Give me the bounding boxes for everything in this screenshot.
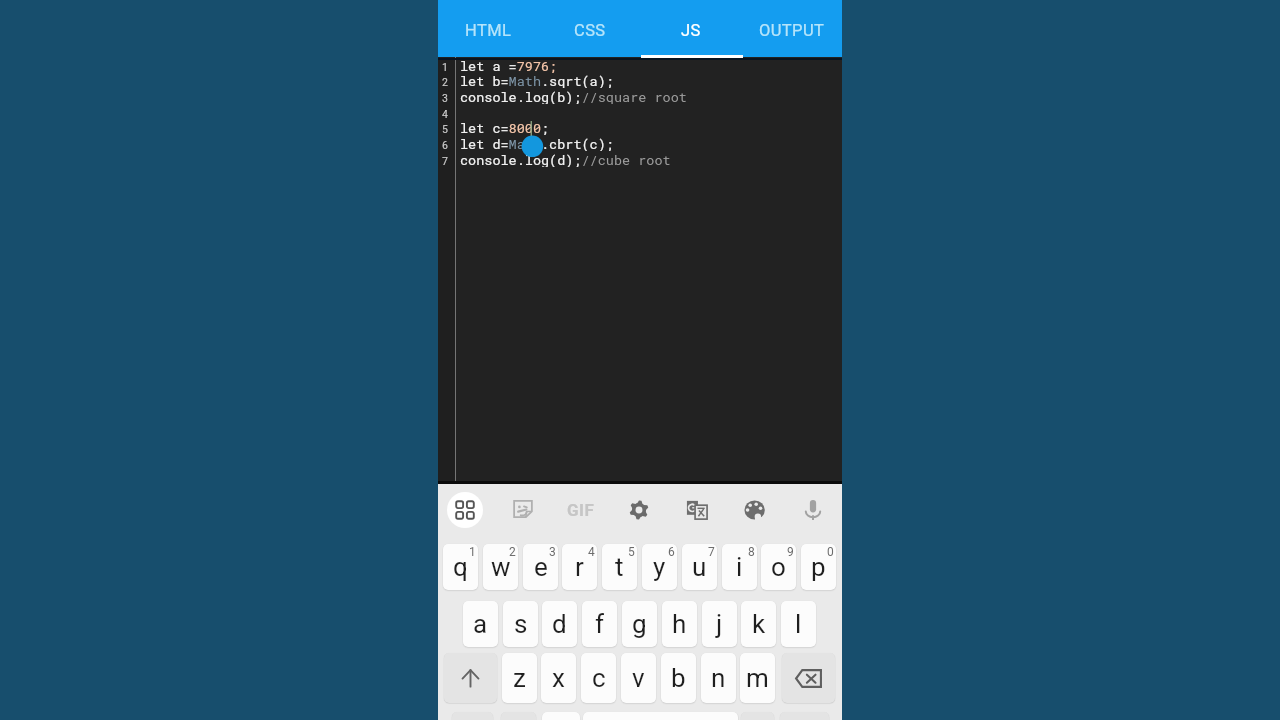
button[interactable]: CSS bbox=[539, 0, 640, 57]
staticText: HTML bbox=[465, 21, 512, 40]
staticText: f bbox=[595, 609, 605, 639]
staticText: let c=8000; bbox=[460, 119, 550, 135]
button[interactable]: Stickers bbox=[501, 488, 545, 532]
button[interactable]: y bbox=[642, 544, 677, 590]
staticText: 3 bbox=[549, 545, 556, 559]
staticText: 5 bbox=[628, 545, 635, 559]
button[interactable]: t bbox=[602, 544, 637, 590]
staticText: 5 bbox=[442, 123, 448, 135]
button[interactable]: Translate bbox=[675, 488, 719, 532]
staticText: k bbox=[752, 609, 766, 639]
button[interactable]: g bbox=[622, 601, 657, 647]
staticText: 7 bbox=[442, 155, 448, 167]
button[interactable]: a bbox=[463, 601, 498, 647]
button[interactable]: k bbox=[741, 601, 776, 647]
button[interactable]: b bbox=[661, 653, 696, 703]
button[interactable]: x bbox=[541, 653, 576, 703]
staticText: 4 bbox=[588, 545, 595, 559]
button[interactable]: m bbox=[740, 653, 775, 703]
staticText: 9 bbox=[787, 545, 794, 559]
staticText: r bbox=[575, 552, 584, 582]
button[interactable]: Apps bbox=[443, 488, 487, 532]
staticText: m bbox=[746, 663, 769, 693]
button[interactable]: Themes bbox=[733, 488, 777, 532]
staticText: 8 bbox=[748, 545, 755, 559]
staticText: p bbox=[811, 552, 826, 582]
staticText: 0 bbox=[827, 545, 834, 559]
staticText: s bbox=[514, 609, 528, 639]
button[interactable]: JS bbox=[640, 0, 741, 57]
staticText: 4 bbox=[442, 108, 448, 120]
button[interactable]: Settings bbox=[617, 488, 661, 532]
staticText: d bbox=[552, 609, 567, 639]
button[interactable]: l bbox=[781, 601, 816, 647]
staticText: CSS bbox=[574, 21, 606, 40]
button[interactable]: i bbox=[722, 544, 757, 590]
staticText: 2 bbox=[442, 76, 448, 88]
button[interactable]: d bbox=[542, 601, 577, 647]
button[interactable]: r bbox=[562, 544, 597, 590]
button[interactable]: w bbox=[483, 544, 518, 590]
staticText: 3 bbox=[442, 92, 448, 104]
button[interactable]: s bbox=[503, 601, 538, 647]
button[interactable]: OUTPUT bbox=[741, 0, 842, 57]
staticText: let a =7976; bbox=[460, 57, 558, 73]
staticText: 6 bbox=[668, 545, 675, 559]
staticText: j bbox=[716, 609, 723, 639]
staticText: console.log(b);//square root bbox=[460, 88, 687, 104]
button[interactable]: Backspace bbox=[782, 653, 835, 703]
staticText: v bbox=[632, 663, 645, 693]
staticText: let b=Math.sqrt(a); bbox=[460, 72, 614, 88]
staticText: 7 bbox=[708, 545, 715, 559]
button[interactable]: c bbox=[581, 653, 616, 703]
staticText: i bbox=[736, 552, 743, 582]
staticText: t bbox=[615, 552, 624, 582]
button[interactable]: u bbox=[682, 544, 717, 590]
staticText: console.log(d);//cube root bbox=[460, 151, 671, 167]
staticText: l bbox=[795, 609, 802, 639]
button[interactable]: Comma bbox=[542, 712, 580, 720]
button[interactable]: HTML bbox=[438, 0, 539, 57]
staticText: 1 bbox=[442, 61, 448, 73]
button[interactable]: q bbox=[443, 544, 478, 590]
button[interactable]: z bbox=[502, 653, 537, 703]
staticText: 1 bbox=[469, 545, 476, 559]
button[interactable]: n bbox=[701, 653, 736, 703]
staticText: u bbox=[692, 552, 707, 582]
staticText: y bbox=[653, 552, 666, 582]
staticText: JS bbox=[681, 21, 701, 40]
staticText: w bbox=[491, 552, 511, 582]
button[interactable]: o bbox=[761, 544, 796, 590]
staticText: b bbox=[671, 663, 686, 693]
button[interactable]: v bbox=[621, 653, 656, 703]
button[interactable]: j bbox=[702, 601, 737, 647]
button[interactable]: p bbox=[801, 544, 836, 590]
staticText: OUTPUT bbox=[759, 21, 825, 40]
button[interactable]: Shift bbox=[444, 653, 497, 703]
staticText: a bbox=[473, 609, 488, 639]
staticText: g bbox=[632, 609, 647, 639]
staticText: 6 bbox=[442, 139, 448, 151]
button[interactable]: h bbox=[662, 601, 697, 647]
staticText: q bbox=[453, 552, 468, 582]
staticText: GIF bbox=[567, 500, 595, 520]
staticText: z bbox=[513, 663, 526, 693]
staticText: 2 bbox=[509, 545, 516, 559]
staticText: let d=Math.cbrt(c); bbox=[460, 135, 614, 151]
button[interactable]: GIF bbox=[559, 488, 603, 532]
staticText: c bbox=[592, 663, 606, 693]
button[interactable]: f bbox=[582, 601, 617, 647]
staticText: e bbox=[534, 552, 548, 582]
staticText: x bbox=[552, 663, 565, 693]
button[interactable]: e bbox=[523, 544, 558, 590]
staticText: o bbox=[771, 552, 786, 582]
button[interactable]: Voice input bbox=[791, 488, 835, 532]
staticText: h bbox=[672, 609, 687, 639]
staticText: n bbox=[711, 663, 726, 693]
